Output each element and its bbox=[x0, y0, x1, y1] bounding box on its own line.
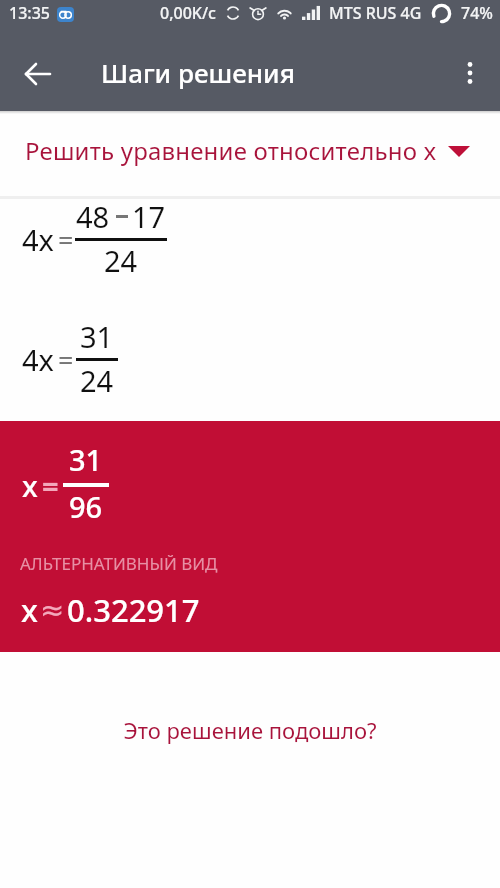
button[interactable]: Это решение подошло? bbox=[0, 709, 500, 751]
staticText: Шаги решения bbox=[101, 55, 295, 90]
staticText: АЛЬТЕРНАТИВНЫЙ ВИД bbox=[20, 552, 218, 575]
staticText: MTS RUS 4G bbox=[329, 2, 422, 24]
staticText: 0,00K/c bbox=[160, 2, 216, 24]
staticText: x bbox=[22, 466, 38, 505]
staticText: 17 bbox=[132, 197, 166, 236]
button[interactable]: More options bbox=[446, 49, 494, 97]
staticText: 48 bbox=[76, 197, 110, 236]
staticText: 0.322917 bbox=[67, 589, 200, 631]
button[interactable]: Решить уравнение относительно x bbox=[0, 126, 500, 175]
staticText: 4x bbox=[22, 340, 54, 379]
staticText: Решить уравнение относительно x bbox=[25, 134, 437, 167]
button[interactable]: Back bbox=[14, 50, 62, 98]
staticText: 13:35 bbox=[9, 2, 50, 24]
staticText: 96 bbox=[69, 487, 103, 526]
staticText: = bbox=[58, 341, 74, 378]
staticText: 31 bbox=[80, 317, 114, 356]
staticText: 4x bbox=[22, 220, 54, 259]
staticText: 74% bbox=[461, 2, 493, 24]
staticText: x bbox=[21, 589, 38, 631]
staticText: ≈ bbox=[40, 593, 65, 627]
staticText: = bbox=[58, 221, 74, 258]
staticText: 31 bbox=[69, 440, 103, 479]
staticText: = bbox=[42, 466, 59, 505]
staticText: 24 bbox=[80, 361, 114, 400]
staticText: 24 bbox=[104, 241, 138, 280]
